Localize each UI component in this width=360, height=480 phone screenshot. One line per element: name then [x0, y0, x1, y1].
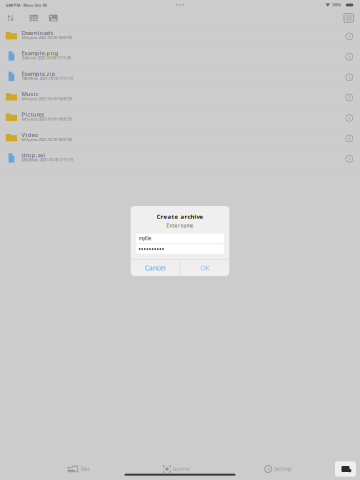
- staticText: Video: [21, 131, 38, 139]
- staticText: Example.png: [21, 49, 58, 57]
- staticText: Example.zip: [21, 69, 55, 77]
- button[interactable]: OK: [180, 259, 229, 276]
- staticText: Mon Oct 18: [23, 2, 46, 8]
- staticText: Cancel: [145, 263, 166, 272]
- staticText: OK: [200, 263, 209, 272]
- staticText: Files: [81, 466, 90, 472]
- staticText: Music: [21, 90, 38, 98]
- button[interactable]: Dismiss keyboard: [335, 461, 356, 477]
- staticText: Enter name: [166, 223, 193, 229]
- staticText: 6:08 PM: [6, 2, 21, 8]
- button[interactable]: Pictures: [0, 108, 360, 128]
- staticText: Downloads: [21, 29, 53, 37]
- button[interactable]: drop.avi: [0, 149, 360, 169]
- staticText: Create archive: [156, 212, 203, 220]
- staticText: 64 bytes 2021-10-18 18:07:39: [21, 136, 71, 142]
- button[interactable]: Video: [0, 128, 360, 148]
- staticText: drop.avi: [21, 151, 45, 159]
- button[interactable]: Example.png: [0, 47, 360, 67]
- staticText: 100%: [332, 3, 341, 7]
- staticText: 64 bytes 2021-10-18 18:07:39: [21, 34, 71, 40]
- button[interactable]: Settings: [259, 461, 298, 476]
- button[interactable]: Files: [62, 462, 96, 476]
- staticText: myfile: [139, 235, 152, 241]
- staticText: Pictures: [21, 110, 44, 118]
- button[interactable]: Music: [0, 88, 360, 108]
- staticText: 683.00 kb 2021-10-18 17:11:19: [21, 157, 72, 163]
- button[interactable]: Example.zip: [0, 67, 360, 87]
- button[interactable]: New folder: [342, 11, 356, 25]
- staticText: 180.06 kb 2021-10-18 17:11:19: [21, 75, 72, 81]
- staticText: 64 bytes 2021-10-18 18:07:39: [21, 116, 71, 122]
- staticText: 64 bytes 2021-10-18 18:07:39: [21, 96, 71, 101]
- button[interactable]: Downloads: [0, 26, 360, 46]
- button[interactable]: View options: [27, 11, 41, 25]
- button[interactable]: Media: [46, 11, 60, 25]
- button[interactable]: Scanner: [157, 462, 197, 476]
- staticText: Settings: [274, 466, 292, 472]
- staticText: 3.04 mb 2021-10-18 17:11:20: [21, 55, 70, 61]
- button[interactable]: Cancel: [131, 259, 180, 276]
- button[interactable]: Sort: [3, 11, 17, 25]
- staticText: Scanner: [173, 466, 191, 472]
